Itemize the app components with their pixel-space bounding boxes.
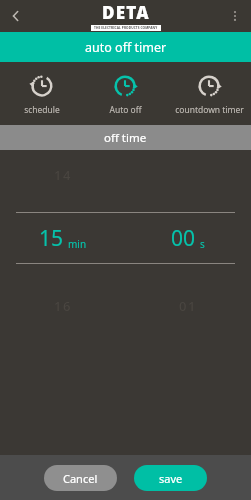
button[interactable]: 15 [0, 224, 125, 253]
button[interactable]: schedule [0, 68, 83, 120]
button[interactable]: countdown timer [167, 68, 251, 120]
staticText: THE ELECTRICAL PRODUCTS COMPANY [94, 26, 158, 30]
staticText: save [159, 471, 183, 486]
staticText: 14 [54, 166, 72, 184]
staticText: DETA [102, 1, 150, 24]
button[interactable]: Back [0, 0, 32, 32]
staticText: off time [104, 130, 147, 146]
staticText: Auto off [109, 104, 142, 116]
staticText: 00 [171, 224, 196, 253]
staticText: min [68, 237, 87, 251]
button[interactable]: Cancel [44, 465, 117, 491]
staticText: Cancel [63, 471, 98, 486]
staticText: auto off timer [85, 39, 167, 56]
button[interactable]: save [134, 465, 207, 491]
staticText: countdown timer [175, 104, 244, 116]
button[interactable]: off time [0, 125, 251, 150]
button[interactable]: More options [219, 0, 251, 32]
button[interactable]: 00 [125, 224, 251, 253]
staticText: 16 [54, 297, 72, 315]
staticText: s [200, 237, 205, 251]
staticText: schedule [24, 104, 60, 116]
staticText: 15 [39, 224, 64, 253]
staticText: 01 [179, 297, 197, 315]
button[interactable]: Auto off [83, 68, 167, 120]
